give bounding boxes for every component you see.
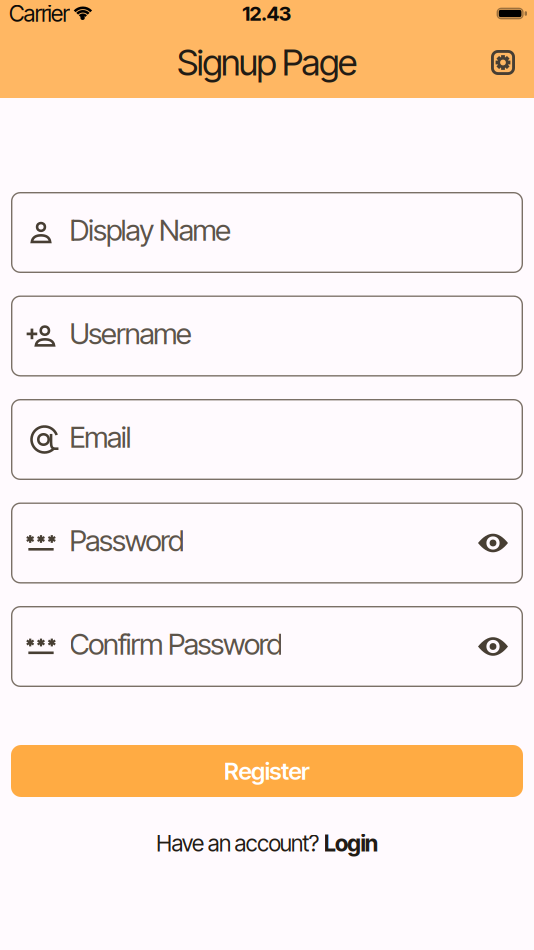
staticText: Register xyxy=(224,757,310,785)
staticText: Signup Page xyxy=(177,41,357,84)
button[interactable]: Username xyxy=(11,295,523,376)
button[interactable]: Register xyxy=(11,745,523,797)
staticText: 12.43 xyxy=(242,2,292,25)
button[interactable]: Show password xyxy=(478,533,523,553)
staticText: Email xyxy=(69,420,132,454)
staticText: Have an account? xyxy=(156,830,319,857)
button[interactable]: Display Name xyxy=(11,192,523,273)
button[interactable]: Settings xyxy=(491,50,515,75)
button[interactable]: Confirm Password xyxy=(11,606,523,687)
button[interactable]: Email xyxy=(11,399,523,480)
staticText: Display Name xyxy=(69,213,231,247)
staticText: Confirm Password xyxy=(69,627,282,661)
button[interactable]: Password xyxy=(11,502,523,583)
staticText: Password xyxy=(69,523,184,558)
staticText: Carrier xyxy=(9,0,69,27)
staticText: Login xyxy=(324,830,378,857)
button[interactable]: Show confirm password xyxy=(478,636,523,656)
button[interactable]: Have an account? xyxy=(156,830,378,857)
staticText: Username xyxy=(69,316,192,351)
